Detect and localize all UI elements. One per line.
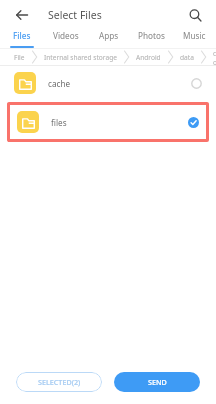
staticText: Internal shared storage: [44, 53, 117, 62]
button[interactable]: Internal shared storage: [44, 53, 117, 62]
button[interactable]: Photos: [130, 30, 173, 41]
staticText: Apps: [99, 30, 119, 41]
button[interactable]: SELECTED(2): [16, 372, 102, 392]
button[interactable]: Back: [10, 3, 34, 27]
staticText: com: [213, 49, 216, 65]
button[interactable]: File: [14, 53, 25, 62]
staticText: SELECTED(2): [38, 377, 81, 387]
staticText: Photos: [138, 30, 165, 41]
staticText: data: [180, 53, 194, 62]
staticText: cache: [48, 78, 71, 89]
button[interactable]: Videos: [44, 30, 87, 41]
button[interactable]: SEND: [114, 372, 200, 392]
button[interactable]: Android: [136, 53, 161, 62]
button[interactable]: Files: [0, 30, 44, 41]
button[interactable]: cache: [0, 66, 216, 100]
staticText: SEND: [148, 377, 167, 387]
staticText: Music: [183, 30, 206, 41]
button[interactable]: Music: [173, 30, 216, 41]
staticText: Android: [136, 53, 161, 62]
staticText: Files: [13, 30, 31, 41]
staticText: File: [14, 53, 25, 62]
button[interactable]: Apps: [87, 30, 130, 41]
staticText: Videos: [53, 30, 79, 41]
button[interactable]: Search: [183, 3, 207, 27]
staticText: Select Files: [48, 8, 102, 22]
button[interactable]: files: [10, 105, 206, 139]
button[interactable]: data: [180, 53, 194, 62]
staticText: files: [51, 117, 67, 128]
button[interactable]: com: [213, 49, 216, 65]
